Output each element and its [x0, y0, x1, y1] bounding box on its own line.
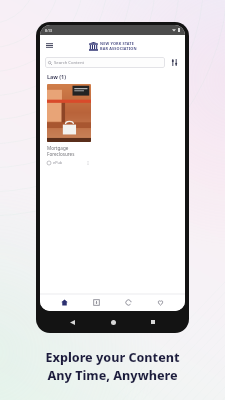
staticText: Foreclosures	[47, 151, 75, 157]
button[interactable]: Sort	[169, 57, 180, 68]
button[interactable]: More options	[84, 159, 91, 166]
button[interactable]: Sync	[121, 295, 136, 310]
button[interactable]: Favorites	[153, 295, 168, 310]
staticText: ePub	[53, 160, 63, 165]
button[interactable]: Home	[109, 318, 117, 326]
staticText: Law (1)	[47, 73, 66, 80]
staticText: Search Content	[54, 60, 85, 66]
button[interactable]: Back	[68, 318, 76, 326]
staticText: Any Time, Anywhere	[47, 367, 178, 384]
button[interactable]: Downloads	[89, 295, 104, 310]
button[interactable]: Open navigation menu	[44, 40, 55, 51]
staticText: 8:13	[45, 28, 52, 33]
button[interactable]: Search Content	[45, 57, 165, 68]
button[interactable]: Mortgage	[47, 84, 91, 166]
button[interactable]: Home	[57, 295, 72, 310]
staticText: Mortgage	[47, 145, 69, 151]
staticText: BAR ASSOCIATION	[100, 46, 137, 51]
staticText: NEW YORK STATE	[100, 41, 134, 46]
staticText: Explore your Content	[45, 349, 180, 366]
button[interactable]: Recents	[149, 318, 157, 326]
